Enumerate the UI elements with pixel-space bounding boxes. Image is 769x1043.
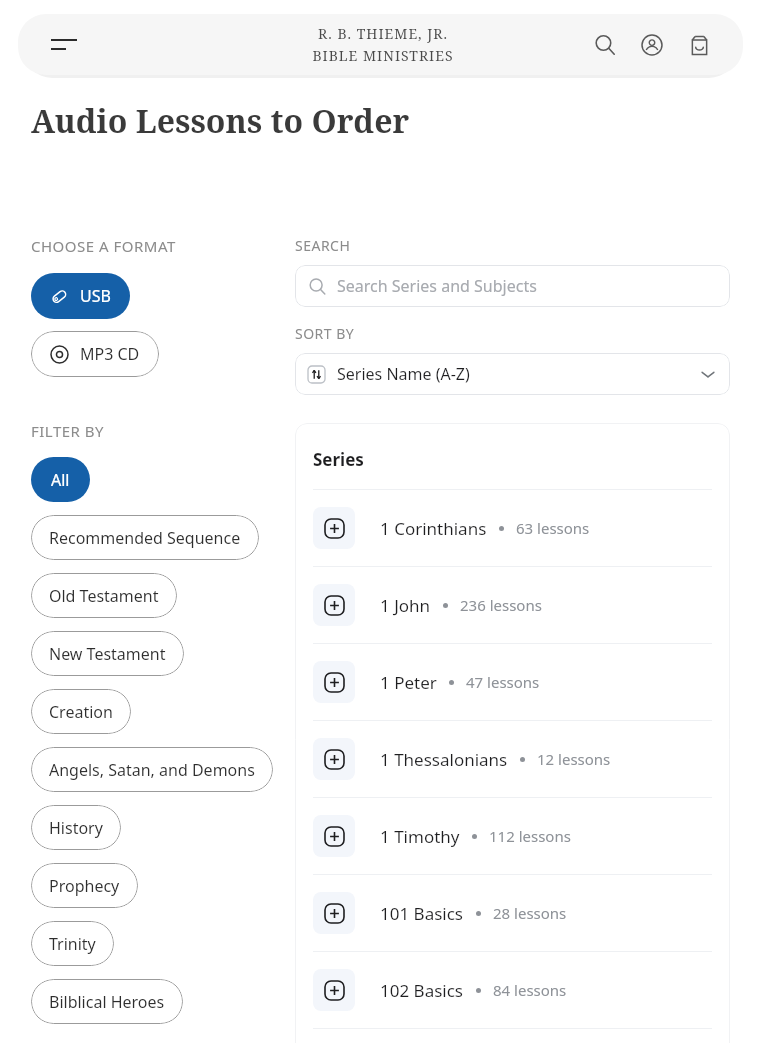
staticText: Creation: [49, 701, 113, 723]
button[interactable]: Trinity: [31, 921, 114, 966]
button[interactable]: 1 Timothy: [295, 798, 730, 874]
staticText: Prophecy: [49, 875, 120, 897]
staticText: USB: [80, 285, 111, 307]
button[interactable]: USB: [31, 273, 130, 319]
button[interactable]: Bilblical Heroes: [31, 979, 183, 1024]
button[interactable]: Search: [588, 28, 622, 62]
staticText: Trinity: [49, 933, 96, 955]
button[interactable]: 1 Thessalonians: [295, 721, 730, 797]
button[interactable]: 1 Corinthians: [295, 490, 730, 566]
staticText: Bilblical Heroes: [49, 991, 165, 1013]
staticText: Series: [313, 448, 364, 471]
staticText: 101 Basics: [380, 902, 464, 925]
button[interactable]: Old Testament: [31, 573, 177, 618]
button[interactable]: 101 Basics: [295, 875, 730, 951]
staticText: R. B. THIEME, JR.: [318, 24, 448, 43]
staticText: 47 lessons: [466, 672, 540, 692]
staticText: History: [49, 817, 103, 839]
button[interactable]: 1 John: [295, 567, 730, 643]
staticText: Audio Lessons to Order: [31, 99, 410, 143]
button[interactable]: Series Name (A-Z): [295, 353, 730, 395]
button[interactable]: 1 Peter: [295, 644, 730, 720]
staticText: 236 lessons: [460, 595, 542, 615]
button[interactable]: Angels, Satan, and Demons: [31, 747, 273, 792]
staticText: 1 Corinthians: [380, 517, 487, 540]
staticText: 1 Thessalonians: [380, 748, 508, 771]
button[interactable]: Account: [635, 28, 669, 62]
staticText: Search Series and Subjects: [337, 275, 537, 297]
staticText: 84 lessons: [493, 980, 567, 1000]
button[interactable]: Menu: [44, 25, 84, 65]
button[interactable]: 102 Basics: [295, 952, 730, 1028]
staticText: All: [51, 469, 70, 491]
staticText: 28 lessons: [493, 903, 567, 923]
staticText: 112 lessons: [489, 826, 571, 846]
staticText: 102 Basics: [380, 979, 464, 1002]
staticText: 1 John: [380, 594, 431, 617]
staticText: FILTER BY: [31, 421, 105, 441]
staticText: Old Testament: [49, 585, 159, 607]
button[interactable]: History: [31, 805, 121, 850]
button[interactable]: Creation: [31, 689, 131, 734]
button[interactable]: Recommended Sequence: [31, 515, 259, 560]
staticText: 1 Peter: [380, 671, 437, 694]
staticText: New Testament: [49, 643, 166, 665]
staticText: MP3 CD: [80, 343, 140, 365]
staticText: BIBLE MINISTRIES: [312, 46, 454, 65]
button[interactable]: MP3 CD: [31, 331, 159, 377]
staticText: SORT BY: [295, 324, 355, 343]
button[interactable]: Search Series and Subjects: [295, 265, 730, 307]
button[interactable]: New Testament: [31, 631, 184, 676]
button[interactable]: Prophecy: [31, 863, 138, 908]
staticText: 1 Timothy: [380, 825, 460, 848]
button[interactable]: All: [31, 457, 90, 502]
staticText: 63 lessons: [516, 518, 590, 538]
button[interactable]: Cart: [682, 28, 716, 62]
staticText: Recommended Sequence: [49, 527, 241, 549]
staticText: CHOOSE A FORMAT: [31, 236, 176, 256]
staticText: Series Name (A-Z): [337, 363, 470, 385]
staticText: Angels, Satan, and Demons: [49, 759, 255, 781]
staticText: SEARCH: [295, 236, 351, 255]
staticText: 12 lessons: [537, 749, 611, 769]
